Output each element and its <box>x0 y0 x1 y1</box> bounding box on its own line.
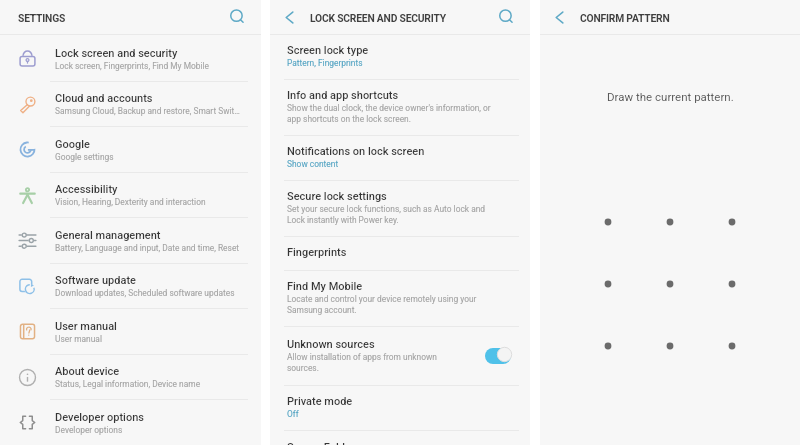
staticText: CONFIRM PATTERN <box>580 12 670 24</box>
button[interactable]: Unknown sources <box>485 347 511 364</box>
button[interactable]: About device <box>0 355 261 399</box>
button[interactable]: Accessibility <box>0 173 261 217</box>
button[interactable]: Fingerprints <box>270 237 530 270</box>
button[interactable]: Private mode <box>270 386 530 430</box>
button[interactable]: Notifications on lock screen <box>270 136 530 180</box>
button[interactable]: Navigate up <box>270 0 310 35</box>
staticText: Fingerprints <box>287 246 347 259</box>
staticText: Private mode <box>287 395 353 408</box>
button[interactable]: Unknown sources <box>270 327 530 385</box>
staticText: Unknown sources <box>287 338 375 351</box>
staticText: Vision, Hearing, Dexterity and interacti… <box>55 197 206 207</box>
button[interactable]: Secure lock settings <box>270 181 530 236</box>
button[interactable]: Software update <box>0 264 261 308</box>
button[interactable]: User manual <box>0 309 261 354</box>
staticText: Google <box>55 138 90 151</box>
staticText: Off <box>287 409 299 419</box>
staticText: Cloud and accounts <box>55 92 153 105</box>
staticText: Notifications on lock screen <box>287 145 425 158</box>
staticText: User manual <box>55 334 102 344</box>
staticText: Show the dual clock, the device owner's … <box>287 103 499 124</box>
button[interactable]: Find My Mobile <box>270 271 530 326</box>
staticText: General management <box>55 229 161 242</box>
staticText: Software update <box>55 274 136 287</box>
staticText: Secure lock settings <box>287 190 387 203</box>
staticText: Info and app shortcuts <box>287 89 399 102</box>
staticText: Locate and control your device remotely … <box>287 294 499 315</box>
staticText: Google settings <box>55 152 114 162</box>
button[interactable]: Cloud and accounts <box>0 82 261 126</box>
button[interactable]: Navigate up <box>540 0 580 35</box>
button[interactable]: Secure Folder <box>270 440 530 445</box>
button[interactable]: Lock screen and security <box>0 36 261 81</box>
button[interactable]: Search <box>492 0 522 32</box>
staticText: SETTINGS <box>18 12 66 24</box>
staticText: Allow installation of apps from unknown … <box>287 352 457 373</box>
staticText: Battery, Language and input, Date and ti… <box>55 243 240 253</box>
staticText: About device <box>55 365 120 378</box>
staticText: Download updates, Scheduled software upd… <box>55 288 235 298</box>
staticText: User manual <box>55 320 117 333</box>
staticText: Set your secure lock functions, such as … <box>287 204 499 225</box>
button[interactable]: Google <box>0 127 261 172</box>
button[interactable]: Developer options <box>0 400 261 445</box>
staticText: Draw the current pattern. <box>607 90 734 103</box>
staticText: Find My Mobile <box>287 280 363 293</box>
staticText: Lock screen and security <box>55 47 178 60</box>
button[interactable]: General management <box>0 218 261 263</box>
staticText: Samsung Cloud, Backup and restore, Smart… <box>55 106 240 116</box>
staticText: LOCK SCREEN AND SECURITY <box>310 12 446 24</box>
staticText: Status, Legal information, Device name <box>55 379 201 389</box>
button[interactable]: Search <box>223 0 253 32</box>
staticText: Secure Folder <box>287 441 355 445</box>
staticText: Show content <box>287 159 339 169</box>
staticText: Screen lock type <box>287 44 369 57</box>
staticText: Lock screen, Fingerprints, Find My Mobil… <box>55 61 209 71</box>
button[interactable]: Screen lock type <box>270 35 530 79</box>
staticText: Accessibility <box>55 183 118 196</box>
staticText: Pattern, Fingerprints <box>287 58 363 68</box>
staticText: Developer options <box>55 411 144 424</box>
button[interactable]: Info and app shortcuts <box>270 80 530 135</box>
staticText: Developer options <box>55 425 123 435</box>
